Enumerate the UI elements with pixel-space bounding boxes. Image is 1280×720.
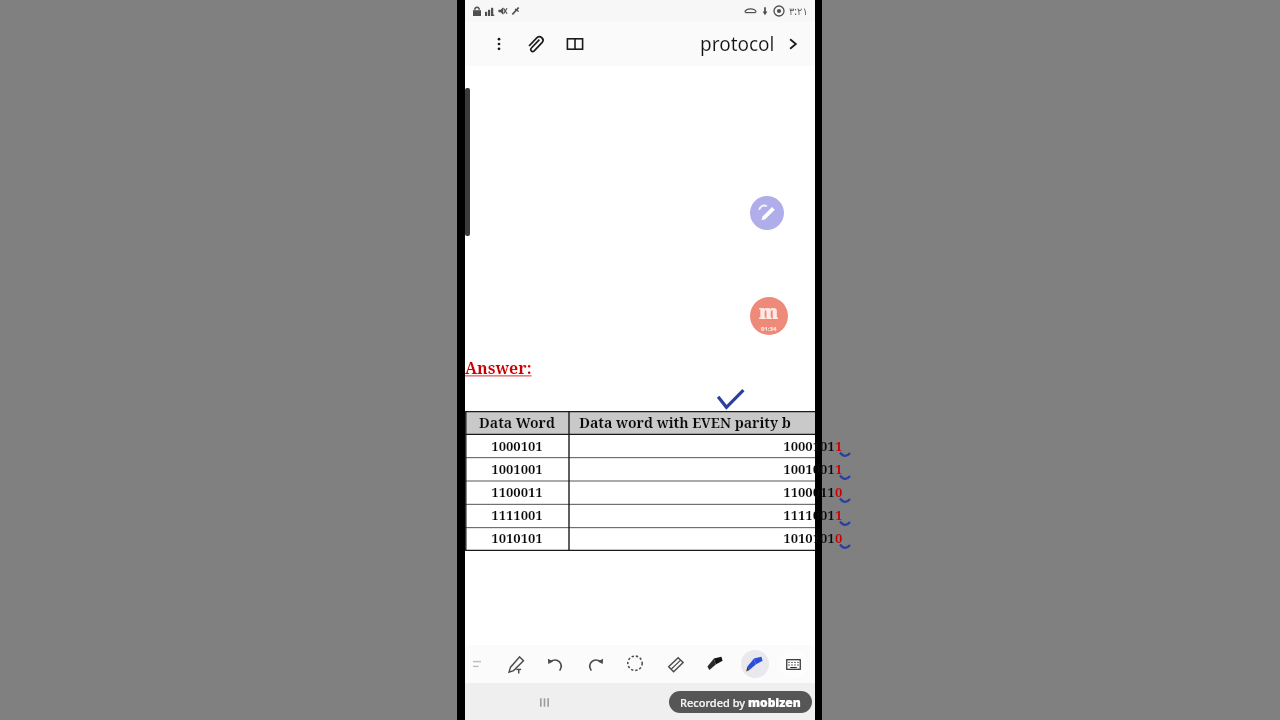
- staticText: 1: [835, 437, 843, 455]
- staticText: 1000101: [491, 437, 543, 455]
- staticText: 1010101: [491, 529, 543, 547]
- button[interactable]: Reading mode: [559, 28, 591, 60]
- button[interactable]: Eraser: [655, 648, 695, 680]
- staticText: 0: [835, 483, 843, 501]
- staticText: 1111001: [783, 506, 835, 524]
- button[interactable]: Marker: [695, 648, 735, 680]
- staticText: 1100011: [491, 483, 543, 501]
- staticText: 1001001: [783, 460, 835, 478]
- staticText: mobizen: [748, 694, 801, 710]
- staticText: Answer:: [465, 357, 532, 379]
- button[interactable]: Highlighter: [735, 648, 775, 680]
- staticText: m: [759, 299, 779, 325]
- staticText: 1000101: [783, 437, 835, 455]
- staticText: 0: [835, 529, 843, 547]
- button[interactable]: Redo: [575, 648, 615, 680]
- staticText: Recorded by: [680, 695, 748, 710]
- staticText: 1001001: [491, 460, 543, 478]
- button[interactable]: More options: [485, 30, 513, 58]
- button[interactable]: Mobizen recorder: [750, 297, 788, 335]
- staticText: Data word with EVEN parity b: [579, 413, 791, 432]
- staticText: ٣:٢١: [789, 4, 808, 18]
- button[interactable]: Attach: [519, 28, 551, 60]
- staticText: Data Word: [479, 413, 555, 432]
- button[interactable]: Undo: [535, 648, 575, 680]
- button[interactable]: Recent apps: [527, 685, 561, 719]
- staticText: protocol: [700, 31, 775, 57]
- staticText: 1: [835, 460, 843, 478]
- button[interactable]: Lasso select: [615, 648, 655, 680]
- staticText: 1111001: [491, 506, 543, 524]
- button[interactable]: Pen with text: [495, 648, 535, 680]
- button[interactable]: Keyboard: [779, 650, 808, 679]
- button[interactable]: protocol: [700, 31, 801, 57]
- staticText: 1100011: [783, 483, 835, 501]
- staticText: 1: [835, 506, 843, 524]
- button[interactable]: Pen tool: [750, 196, 784, 230]
- staticText: 01:34: [761, 325, 777, 333]
- staticText: 1010101: [783, 529, 835, 547]
